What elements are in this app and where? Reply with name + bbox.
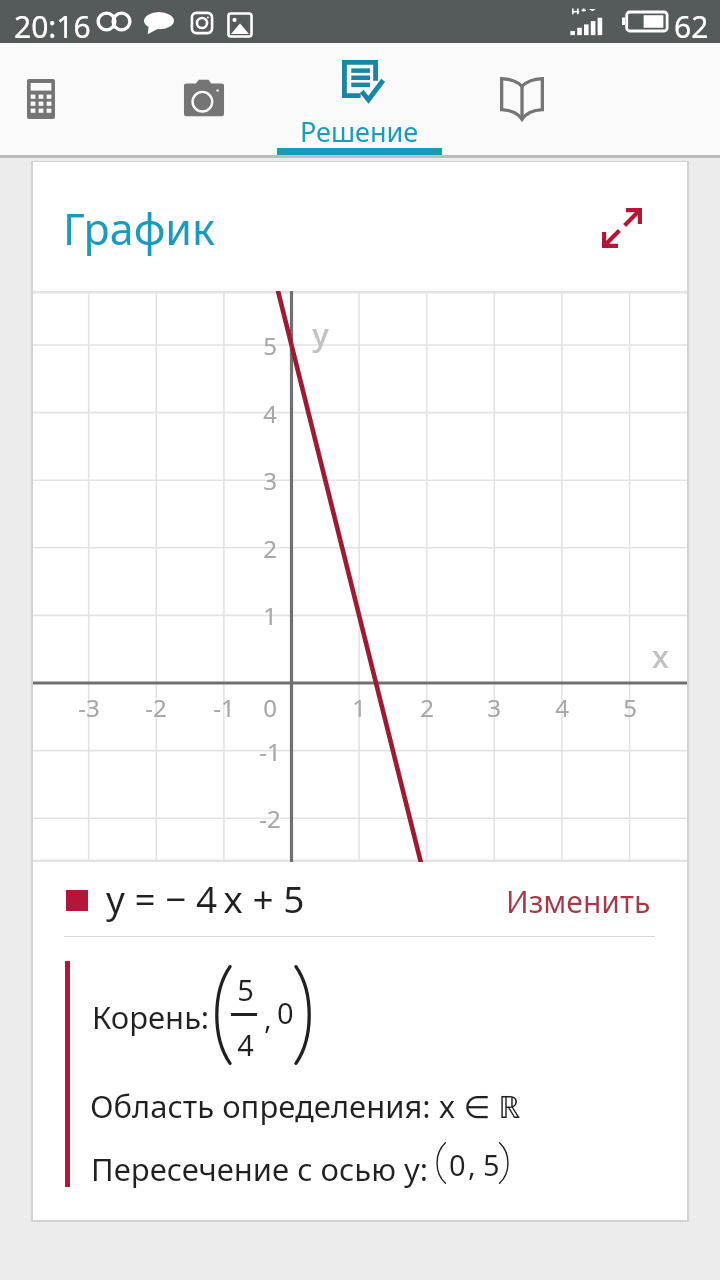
staticText: -2 (259, 802, 281, 835)
button[interactable]: Изменить (500, 875, 657, 928)
staticText: 62 (674, 6, 709, 47)
staticText: 5 (483, 1145, 500, 1184)
staticText: 3 (487, 691, 501, 724)
staticText: 2 (263, 532, 277, 565)
staticText: , (264, 998, 272, 1037)
staticText: -2 (145, 691, 167, 724)
staticText: Изменить (506, 881, 651, 922)
staticText: Область определения: x ∈ ℝ (90, 1085, 521, 1127)
staticText: -1 (259, 735, 281, 768)
staticText: , (468, 1145, 476, 1184)
staticText: 0 (277, 993, 294, 1032)
staticText: 4 (263, 397, 277, 430)
staticText: 4 (237, 1025, 254, 1064)
button[interactable]: Camera (121, 43, 286, 155)
staticText: 0 (449, 1145, 466, 1184)
staticText: 3 (263, 464, 277, 497)
staticText: 5 (263, 329, 277, 362)
staticText: 0 (263, 691, 277, 724)
staticText: x (652, 635, 669, 677)
staticText: 1 (352, 691, 366, 724)
staticText: 4 (555, 691, 569, 724)
button[interactable]: Expand (602, 208, 642, 248)
staticText: Решение (300, 113, 419, 150)
staticText: -1 (213, 691, 235, 724)
staticText: -3 (78, 691, 100, 724)
staticText: y (312, 313, 329, 355)
staticText: 5 (237, 970, 254, 1009)
staticText: 2 (420, 691, 434, 724)
button[interactable]: Решение (277, 43, 442, 155)
staticText: Корень: (92, 996, 210, 1038)
staticText: Пересечение с осью y: (91, 1148, 429, 1190)
button[interactable]: Calculator (0, 43, 123, 155)
staticText: График (63, 199, 215, 258)
staticText: 20:16 (14, 6, 91, 47)
button[interactable]: Book (439, 43, 604, 155)
staticText: 5 (623, 691, 637, 724)
staticText: y = − 4 x + 5 (106, 873, 305, 923)
staticText: 1 (263, 599, 277, 632)
